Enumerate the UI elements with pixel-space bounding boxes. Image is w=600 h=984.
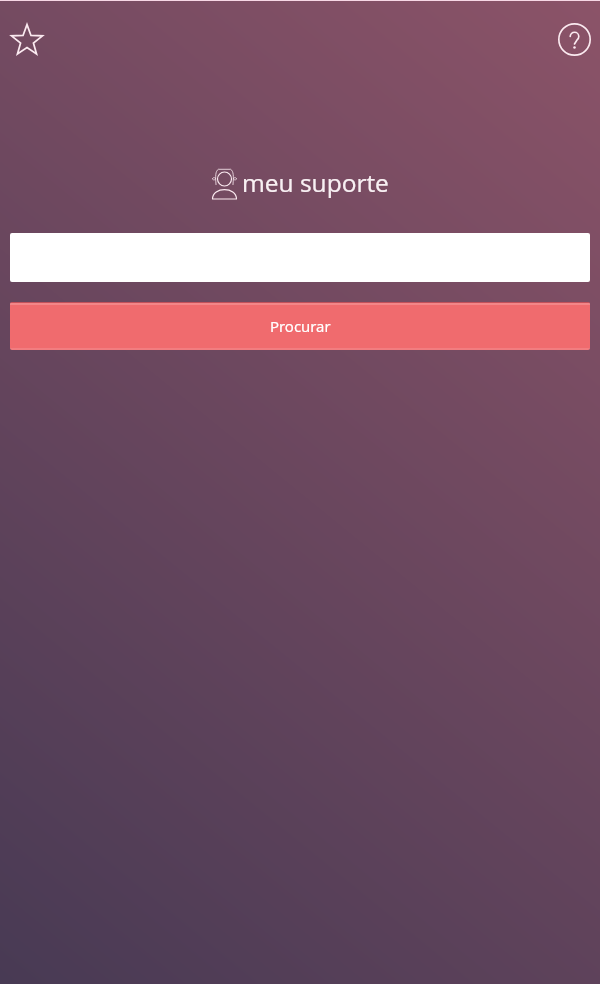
button[interactable]: Help [551,16,597,62]
button[interactable]: Favorite [4,16,50,62]
staticText: Procurar [270,316,331,336]
button[interactable]: Procurar [10,302,590,350]
staticText: meu suporte [242,166,389,199]
